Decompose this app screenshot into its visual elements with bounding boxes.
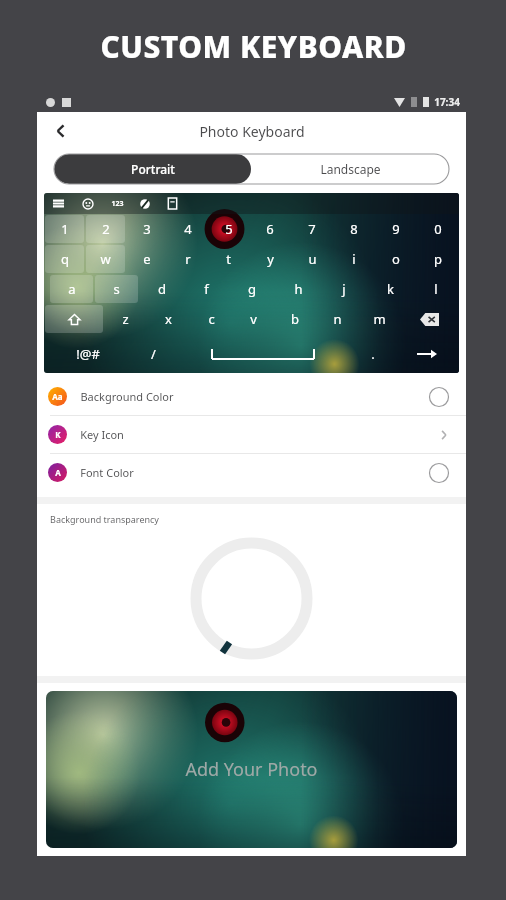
staticText: a xyxy=(68,280,76,298)
button[interactable]: 0 xyxy=(418,215,458,243)
button[interactable]: 5 xyxy=(209,215,248,243)
button[interactable]: Transparency dial xyxy=(189,536,314,661)
staticText: 2 xyxy=(102,220,110,238)
staticText: 0 xyxy=(434,220,442,238)
staticText: Key Icon xyxy=(80,427,124,442)
button[interactable]: Toggle xyxy=(428,462,450,484)
staticText: b xyxy=(291,310,299,328)
button[interactable]: d xyxy=(140,275,183,303)
button[interactable]: Enter xyxy=(395,334,459,373)
staticText: . xyxy=(371,345,375,363)
button[interactable]: Space xyxy=(175,334,351,373)
button[interactable]: Add Your Photo xyxy=(46,691,457,848)
staticText: Landscape xyxy=(320,161,381,177)
staticText: r xyxy=(185,250,191,268)
staticText: Portrait xyxy=(131,161,175,177)
staticText: Aa xyxy=(52,391,63,402)
staticText: Font Color xyxy=(80,465,134,480)
staticText: q xyxy=(61,250,69,268)
button[interactable]: t xyxy=(209,245,248,273)
button[interactable]: . xyxy=(351,334,395,373)
button[interactable]: l xyxy=(414,275,458,303)
button[interactable]: 3 xyxy=(127,215,166,243)
staticText: k xyxy=(387,280,394,298)
button[interactable]: 7 xyxy=(292,215,332,243)
button[interactable]: 9 xyxy=(376,215,416,243)
staticText: 1 xyxy=(61,220,69,238)
staticText: i xyxy=(352,250,356,268)
button[interactable]: i xyxy=(334,245,374,273)
button[interactable]: p xyxy=(418,245,458,273)
button[interactable]: a xyxy=(50,275,93,303)
button[interactable]: 6 xyxy=(250,215,290,243)
staticText: Background Color xyxy=(80,389,174,404)
button[interactable]: Backspace xyxy=(400,304,459,334)
staticText: 6 xyxy=(266,220,274,238)
staticText: 17:34 xyxy=(434,95,460,109)
button[interactable]: Back xyxy=(45,115,77,147)
staticText: y xyxy=(267,250,274,268)
button[interactable]: s xyxy=(95,275,138,303)
button[interactable]: A xyxy=(37,454,466,491)
staticText: CUSTOM KEYBOARD xyxy=(100,26,407,67)
button[interactable]: Landscape xyxy=(251,154,449,184)
button[interactable]: u xyxy=(292,245,332,273)
button[interactable]: v xyxy=(232,304,274,334)
staticText: u xyxy=(308,250,317,268)
staticText: c xyxy=(208,310,215,328)
button[interactable]: 2 xyxy=(86,215,125,243)
button[interactable]: 8 xyxy=(334,215,374,243)
button[interactable]: e xyxy=(127,245,166,273)
staticText: f xyxy=(204,280,209,298)
button[interactable]: Shift xyxy=(45,305,103,333)
button[interactable]: g xyxy=(230,275,274,303)
button[interactable]: q xyxy=(45,245,84,273)
staticText: / xyxy=(151,345,156,363)
staticText: Background transparency xyxy=(50,513,159,525)
staticText: h xyxy=(294,280,303,298)
button[interactable]: Toggle xyxy=(428,386,450,408)
button[interactable]: Aa xyxy=(37,378,466,415)
button[interactable]: 4 xyxy=(168,215,207,243)
staticText: t xyxy=(226,250,231,268)
button[interactable]: j xyxy=(322,275,366,303)
staticText: e xyxy=(143,250,151,268)
button[interactable]: m xyxy=(358,304,400,334)
staticText: n xyxy=(333,310,342,328)
button[interactable]: f xyxy=(185,275,228,303)
button[interactable]: h xyxy=(276,275,320,303)
staticText: 9 xyxy=(392,220,400,238)
button[interactable]: / xyxy=(131,334,175,373)
button[interactable]: c xyxy=(190,304,232,334)
staticText: 5 xyxy=(225,220,233,238)
button[interactable]: r xyxy=(168,245,207,273)
button[interactable]: y xyxy=(250,245,290,273)
staticText: p xyxy=(434,250,442,268)
button[interactable]: x xyxy=(147,304,190,334)
button[interactable]: Portrait xyxy=(54,154,251,184)
staticText: 8 xyxy=(350,220,358,238)
button[interactable]: z xyxy=(104,304,147,334)
staticText: l xyxy=(434,280,438,298)
staticText: g xyxy=(248,280,256,298)
staticText: z xyxy=(122,310,129,328)
staticText: m xyxy=(373,310,386,328)
staticText: d xyxy=(158,280,166,298)
staticText: w xyxy=(100,250,111,268)
staticText: K xyxy=(55,429,61,440)
staticText: v xyxy=(250,310,257,328)
staticText: s xyxy=(113,280,120,298)
staticText: A xyxy=(55,467,61,478)
staticText: x xyxy=(165,310,172,328)
staticText: 3 xyxy=(143,220,151,238)
button[interactable]: !@# xyxy=(44,334,131,373)
button[interactable]: w xyxy=(86,245,125,273)
button[interactable]: b xyxy=(274,304,316,334)
button[interactable]: k xyxy=(368,275,412,303)
button[interactable]: n xyxy=(316,304,358,334)
button[interactable]: 1 xyxy=(45,215,84,243)
button[interactable]: o xyxy=(376,245,416,273)
button[interactable]: K xyxy=(37,416,466,453)
staticText: 123 xyxy=(111,199,124,209)
staticText: 4 xyxy=(184,220,192,238)
